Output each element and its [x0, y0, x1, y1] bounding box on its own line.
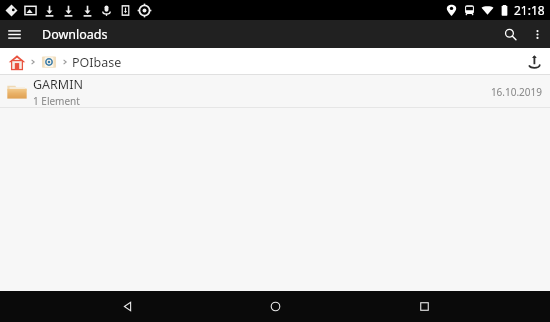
button[interactable]: GARMIN — [0, 75, 550, 108]
button[interactable]: POIbase — [70, 54, 124, 71]
button[interactable]: Home folder — [6, 51, 28, 73]
staticText: 1 Element — [33, 94, 80, 108]
button[interactable]: Go to parent folder — [522, 51, 544, 73]
button[interactable]: Recent apps — [402, 291, 446, 322]
button[interactable]: Open navigation drawer — [0, 20, 28, 48]
button[interactable]: Back — [105, 291, 149, 322]
staticText: POIbase — [72, 54, 122, 71]
staticText: 16.10.2019 — [490, 85, 542, 99]
button[interactable]: More options — [524, 21, 550, 47]
button[interactable]: Home — [253, 291, 297, 322]
button[interactable]: Storage — [38, 51, 60, 73]
staticText: GARMIN — [33, 76, 83, 93]
button[interactable]: Search — [496, 20, 524, 48]
staticText: 21:18 — [514, 2, 545, 18]
staticText: Downloads — [42, 26, 108, 43]
